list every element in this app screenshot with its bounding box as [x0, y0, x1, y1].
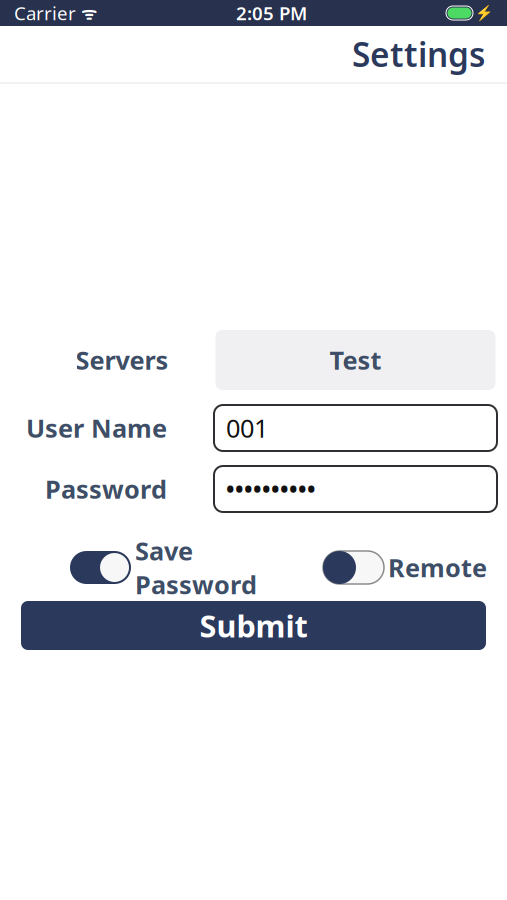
button[interactable]: Remote: [323, 551, 487, 584]
button[interactable]: Test: [215, 330, 495, 390]
staticText: ••••••••••: [226, 474, 316, 504]
staticText: 001: [226, 411, 268, 445]
button[interactable]: 001: [214, 405, 497, 451]
staticText: User Name: [26, 411, 167, 445]
button[interactable]: Save Password: [70, 534, 257, 601]
staticText: 2:05 PM: [236, 1, 307, 25]
staticText: Settings: [352, 32, 485, 76]
staticText: Save Password: [135, 534, 257, 601]
staticText: Submit: [199, 605, 307, 646]
staticText: ⚡: [475, 5, 493, 21]
staticText: Test: [329, 343, 381, 377]
staticText: Servers: [75, 343, 168, 377]
button[interactable]: ••••••••••: [214, 466, 497, 512]
staticText: Password: [45, 472, 167, 506]
button[interactable]: Settings: [352, 26, 507, 82]
staticText: ᯤ: [76, 1, 97, 24]
staticText: Remote: [388, 551, 487, 584]
staticText: Carrier: [14, 1, 76, 25]
button[interactable]: Submit: [21, 601, 486, 650]
